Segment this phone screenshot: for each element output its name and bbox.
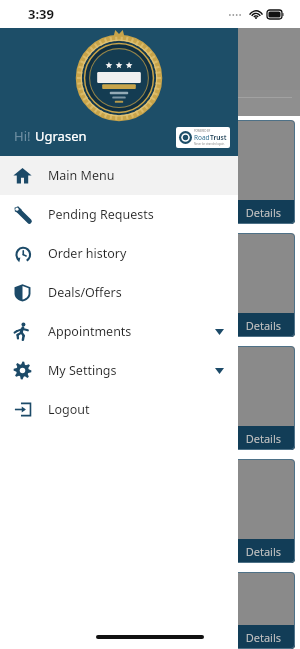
- staticText: Details: [5, 205, 281, 220]
- staticText: Details: [5, 544, 281, 559]
- button[interactable]: Details: [5, 426, 295, 450]
- staticText: Appointments: [48, 323, 132, 340]
- staticText: Main Menu: [48, 167, 115, 184]
- button[interactable]: Deals/Offers: [0, 273, 238, 312]
- staticText: Never be stranded again.: [194, 142, 225, 146]
- button[interactable]: Details: [5, 120, 295, 224]
- button[interactable]: Main Menu: [0, 156, 238, 195]
- button[interactable]: Details: [5, 313, 295, 337]
- button[interactable]: Details: [5, 233, 295, 337]
- staticText: Deals/Offers: [48, 284, 122, 301]
- staticText: Logout: [48, 401, 90, 418]
- staticText: Trust: [210, 133, 227, 142]
- button[interactable]: Appointments: [0, 312, 238, 351]
- button[interactable]: Search: [0, 90, 300, 116]
- staticText: My Settings: [48, 362, 117, 379]
- staticText: Hi!: [14, 127, 31, 145]
- button[interactable]: Details: [5, 200, 295, 224]
- button[interactable]: My Settings: [0, 351, 238, 390]
- button[interactable]: Details: [5, 346, 295, 450]
- staticText: 3:39: [28, 5, 54, 23]
- staticText: Details: [5, 318, 281, 333]
- button[interactable]: Order history: [0, 234, 238, 273]
- staticText: Details: [5, 630, 281, 645]
- button[interactable]: Details: [5, 539, 295, 563]
- staticText: Ugrasen: [35, 127, 87, 145]
- button[interactable]: Details: [5, 572, 295, 649]
- staticText: POWERED BY: [194, 129, 211, 133]
- button[interactable]: Logout: [0, 390, 238, 429]
- button[interactable]: Details: [5, 459, 295, 563]
- staticText: Pending Requests: [48, 206, 154, 223]
- staticText: Order history: [48, 245, 127, 262]
- staticText: Road: [194, 133, 210, 142]
- button[interactable]: Pending Requests: [0, 195, 238, 234]
- staticText: Details: [5, 431, 281, 446]
- button[interactable]: Details: [5, 625, 295, 649]
